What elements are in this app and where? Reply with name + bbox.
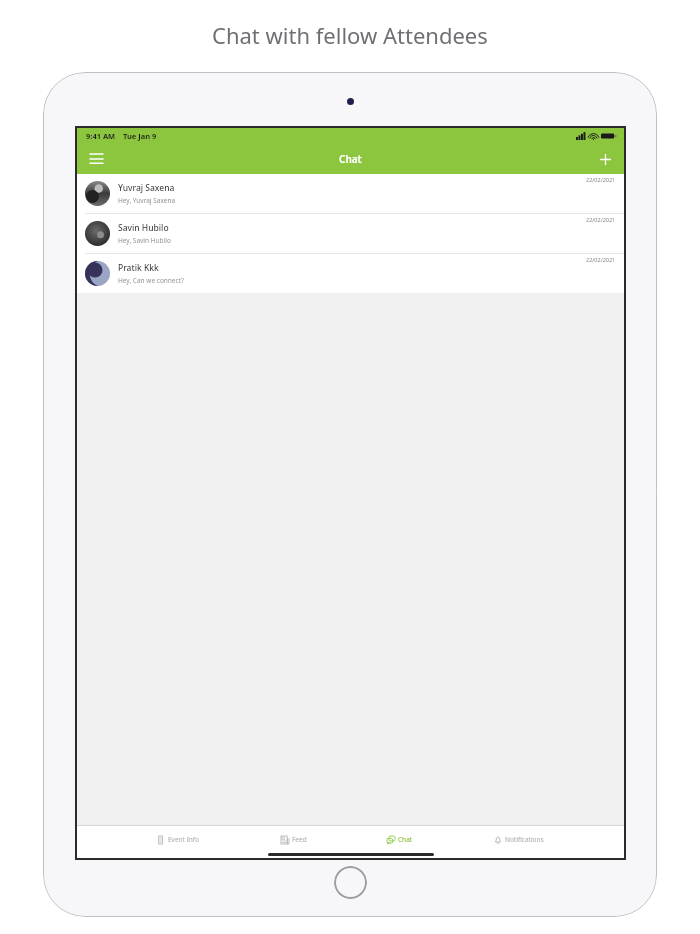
button[interactable]: Pratik Kkk <box>77 254 624 293</box>
button[interactable]: Event Info <box>157 835 200 844</box>
staticText: Event Info <box>168 835 200 844</box>
staticText: Hey, Yuvraj Saxena <box>118 196 176 205</box>
button[interactable]: Chat <box>387 835 413 844</box>
staticText: Chat <box>398 835 413 844</box>
button[interactable]: Notifications <box>494 835 544 844</box>
staticText: Feed <box>292 835 307 844</box>
staticText: Hey, Can we connect? <box>118 276 184 285</box>
staticText: Pratik Kkk <box>118 262 159 274</box>
staticText: 22/02/2021 <box>586 176 616 183</box>
staticText: Savin Hubilo <box>118 222 169 234</box>
staticText: 22/02/2021 <box>586 216 616 223</box>
staticText: Hey, Savin Hubilo <box>118 236 171 245</box>
button[interactable]: Yuvraj Saxena <box>77 174 624 213</box>
staticText: Tue Jan 9 <box>123 131 157 141</box>
staticText: 9:41 AM <box>86 131 116 141</box>
staticText: 22/02/2021 <box>586 256 616 263</box>
button[interactable]: Feed <box>281 835 307 844</box>
button[interactable]: Savin Hubilo <box>77 214 624 253</box>
button[interactable]: New chat <box>593 147 617 171</box>
staticText: Chat <box>339 152 362 166</box>
staticText: Yuvraj Saxena <box>118 182 175 194</box>
button[interactable]: Open navigation menu <box>84 147 108 171</box>
staticText: Notifications <box>505 835 544 844</box>
staticText: Chat with fellow Attendees <box>212 20 488 50</box>
